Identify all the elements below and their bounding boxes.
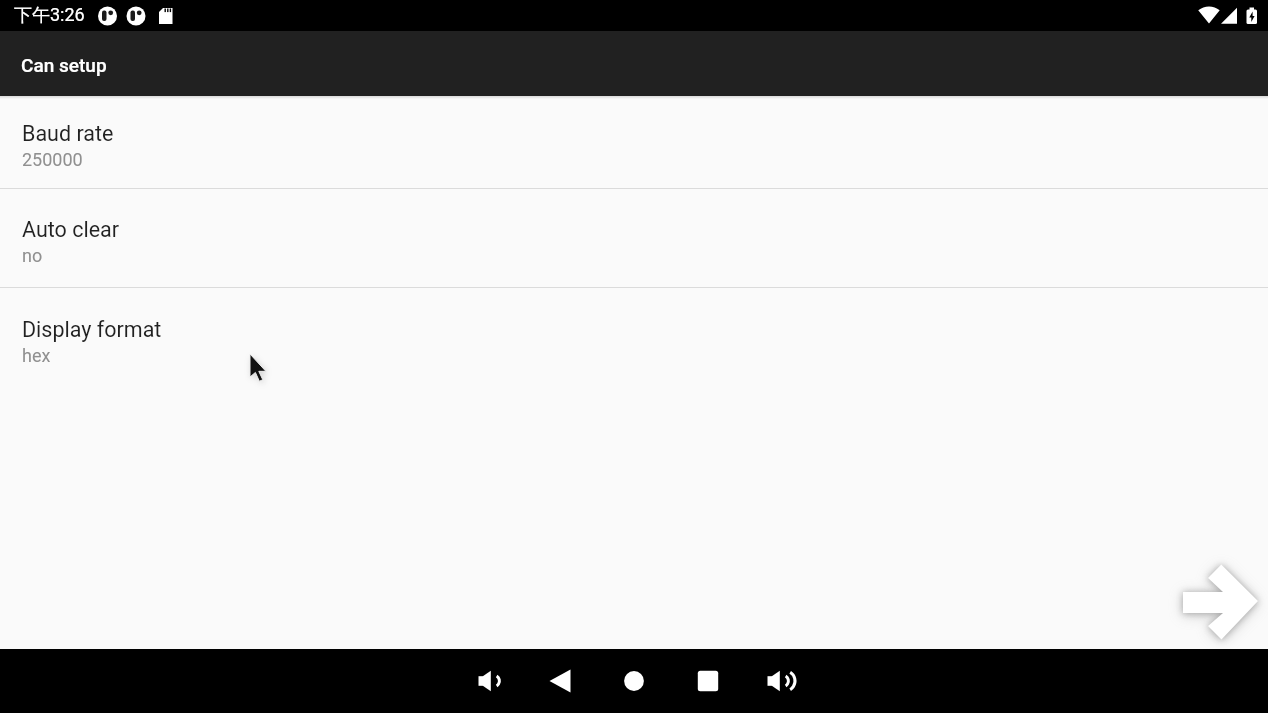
staticText: Display format bbox=[22, 317, 162, 342]
staticText: Can setup bbox=[21, 54, 107, 76]
staticText: 250000 bbox=[22, 149, 83, 170]
button[interactable] bbox=[597, 649, 671, 713]
staticText: Auto clear bbox=[22, 217, 120, 242]
button[interactable] bbox=[523, 649, 597, 713]
staticText: no bbox=[22, 245, 43, 266]
button[interactable]: Baud rate bbox=[0, 96, 1268, 188]
button[interactable]: Auto clear bbox=[0, 189, 1268, 287]
button[interactable] bbox=[1176, 554, 1266, 644]
staticText: 下午3:26 bbox=[14, 4, 85, 27]
staticText: hex bbox=[22, 345, 51, 366]
button[interactable] bbox=[671, 649, 745, 713]
button[interactable] bbox=[745, 649, 819, 713]
button[interactable] bbox=[449, 649, 523, 713]
button[interactable]: Display format bbox=[0, 288, 1268, 387]
staticText: Baud rate bbox=[22, 121, 114, 146]
